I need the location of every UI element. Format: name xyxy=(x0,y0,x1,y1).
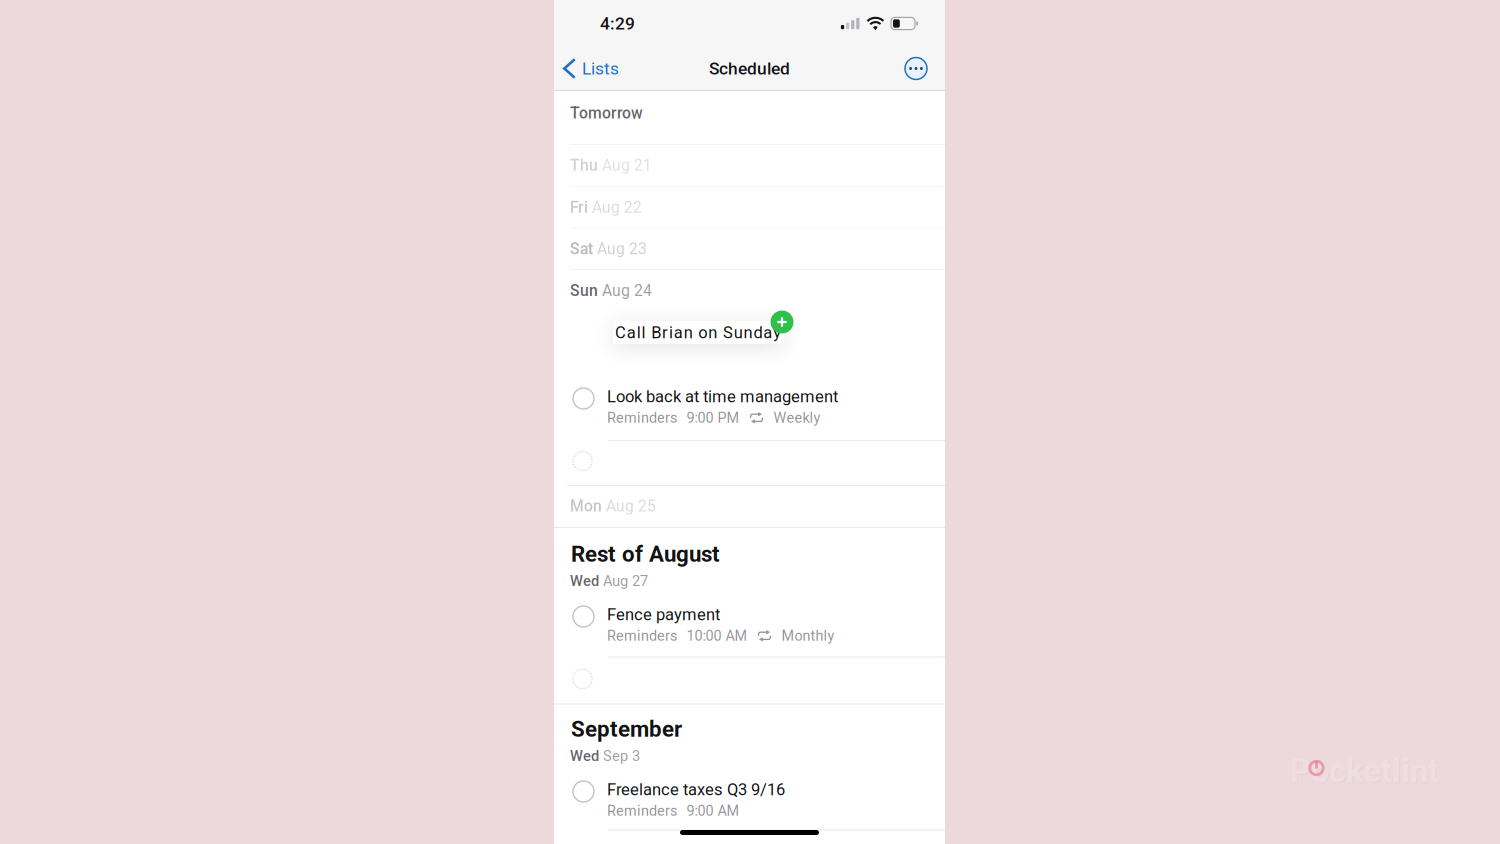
staticText: Sun xyxy=(570,281,598,300)
staticText: Aug 22 xyxy=(592,198,642,216)
staticText: 9:00 PM xyxy=(686,409,739,426)
staticText: Sep 3 xyxy=(603,747,640,765)
button[interactable]: Wed xyxy=(554,745,945,767)
staticText: 4:29 xyxy=(600,13,635,34)
staticText: Freelance taxes Q3 9/16 xyxy=(607,780,785,799)
button[interactable]: Wed xyxy=(554,570,945,592)
staticText: Wed xyxy=(570,747,599,765)
staticText: Aug 25 xyxy=(606,497,656,515)
staticText: Aug 21 xyxy=(602,156,652,174)
button[interactable]: Lists xyxy=(554,50,629,87)
staticText: Fri xyxy=(570,198,588,216)
staticText: Reminders xyxy=(607,802,677,819)
button[interactable]: More options xyxy=(893,48,945,88)
staticText: Call Brian on Sunday xyxy=(615,323,781,342)
staticText: September xyxy=(571,716,682,742)
staticText: Aug 24 xyxy=(602,281,652,300)
button[interactable]: Sun xyxy=(554,270,945,311)
staticText: Mon xyxy=(570,497,602,515)
staticText: 10:00 AM xyxy=(686,627,747,644)
staticText: 9:00 AM xyxy=(686,802,739,819)
staticText: Aug 23 xyxy=(597,239,647,258)
staticText: Reminders xyxy=(607,409,677,426)
staticText: Sat xyxy=(570,239,593,258)
staticText: Look back at time management xyxy=(607,387,838,406)
button[interactable]: Fence payment xyxy=(554,599,945,649)
staticText: Tomorrow xyxy=(570,104,643,122)
staticText: Rest of August xyxy=(571,541,720,567)
button[interactable]: Mon xyxy=(554,485,945,527)
staticText: Lists xyxy=(582,58,619,79)
button[interactable]: Fri xyxy=(554,186,945,228)
staticText: Scheduled xyxy=(709,58,790,79)
button[interactable]: Sat xyxy=(554,228,945,269)
staticText: Pocketlint xyxy=(1291,753,1440,791)
button[interactable]: New reminder xyxy=(554,440,945,482)
staticText: Aug 27 xyxy=(603,572,648,590)
staticText: Monthly xyxy=(781,627,834,644)
staticText: Pocketlint xyxy=(1290,752,1439,790)
staticText: Wed xyxy=(570,572,599,590)
staticText: Weekly xyxy=(773,409,820,426)
button[interactable]: Call Brian on Sunday xyxy=(613,321,784,344)
staticText: Thu xyxy=(570,156,598,174)
staticText: Fence payment xyxy=(607,605,720,624)
staticText: Reminders xyxy=(607,627,677,644)
button[interactable]: Thu xyxy=(554,144,945,186)
button[interactable]: Look back at time management xyxy=(554,380,945,440)
button[interactable]: Freelance taxes Q3 9/16 xyxy=(554,774,945,824)
